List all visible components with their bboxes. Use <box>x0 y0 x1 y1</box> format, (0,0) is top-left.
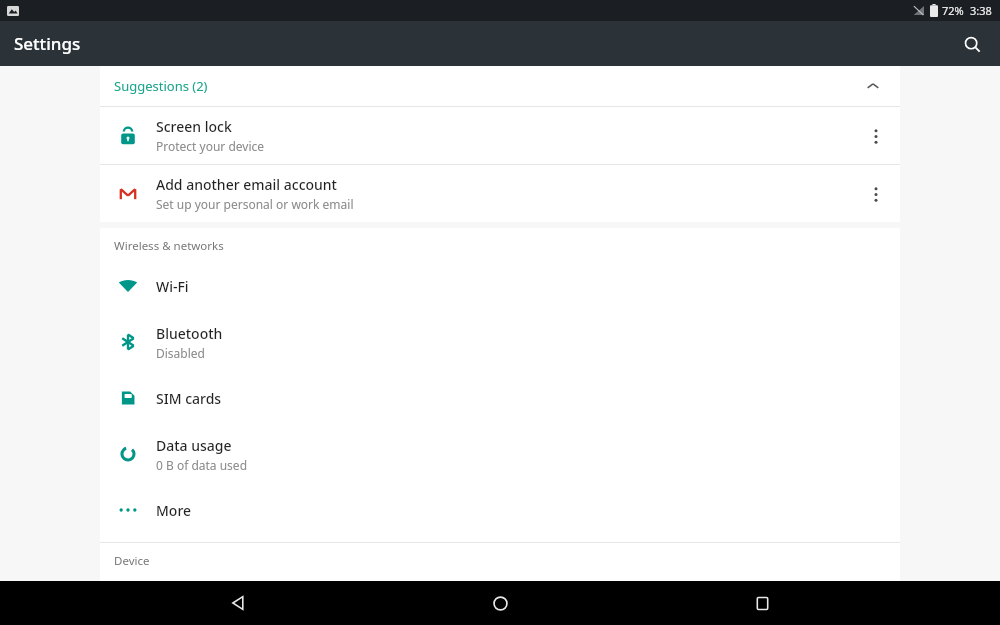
button[interactable]: Wi-Fi <box>100 258 900 314</box>
staticText: Data usage <box>156 436 232 455</box>
staticText: Protect your device <box>156 138 265 154</box>
button[interactable]: Screen lock <box>100 107 900 164</box>
staticText: Screen lock <box>156 117 232 136</box>
staticText: Set up your personal or work email <box>156 196 354 212</box>
button[interactable]: Add another email account <box>100 165 900 222</box>
button[interactable]: Bluetooth <box>100 314 900 370</box>
staticText: Bluetooth <box>156 324 223 343</box>
button[interactable]: Search <box>956 28 988 60</box>
staticText: More <box>156 501 192 520</box>
staticText: Add another email account <box>156 175 337 194</box>
staticText: Wireless & networks <box>114 238 224 254</box>
staticText: 3:38 <box>970 3 992 18</box>
button[interactable]: Data usage <box>100 426 900 482</box>
staticText: Device <box>114 553 150 569</box>
button[interactable]: Back <box>214 581 262 625</box>
button[interactable]: More options <box>862 122 890 150</box>
button[interactable]: Suggestions (2) <box>100 66 900 106</box>
other: Collapse suggestions <box>860 73 886 99</box>
staticText: SIM cards <box>156 389 222 408</box>
button[interactable]: SIM cards <box>100 370 900 426</box>
staticText: Disabled <box>156 345 205 361</box>
staticText: 0 B of data used <box>156 457 248 473</box>
button[interactable]: More options <box>862 180 890 208</box>
button[interactable]: More <box>100 482 900 538</box>
button[interactable]: Recent apps <box>738 581 786 625</box>
staticText: Wi-Fi <box>156 277 189 296</box>
staticText: 72% <box>942 3 964 18</box>
staticText: Settings <box>14 32 81 55</box>
button[interactable]: Home <box>476 581 524 625</box>
staticText: Suggestions (2) <box>114 77 208 95</box>
